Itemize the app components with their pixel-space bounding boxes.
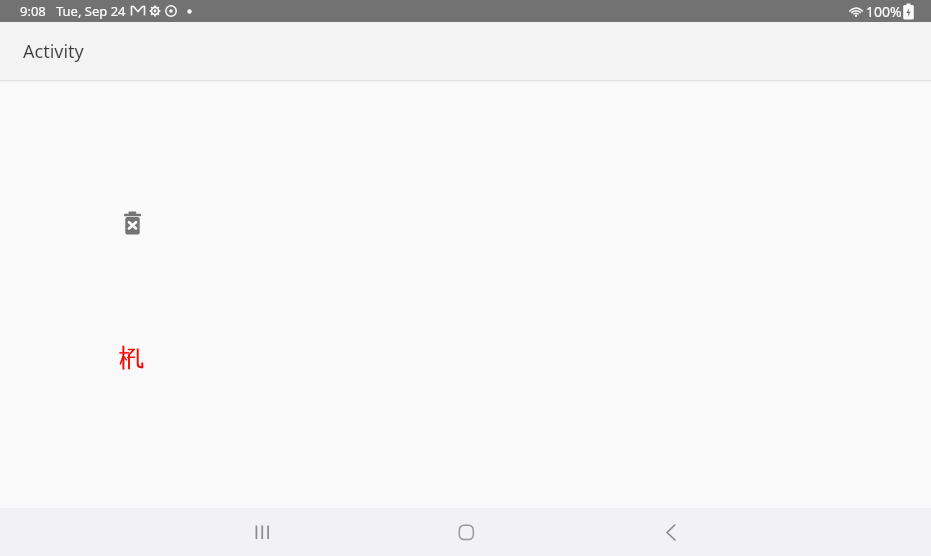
button[interactable] xyxy=(444,518,488,546)
button[interactable] xyxy=(240,518,284,546)
staticText: 9:08 xyxy=(20,2,46,20)
staticText: Tue, Sep 24 xyxy=(56,2,126,20)
staticText: 100% xyxy=(866,2,902,21)
button[interactable] xyxy=(648,518,692,546)
button[interactable] xyxy=(124,211,142,236)
staticText: Activity xyxy=(23,39,84,64)
